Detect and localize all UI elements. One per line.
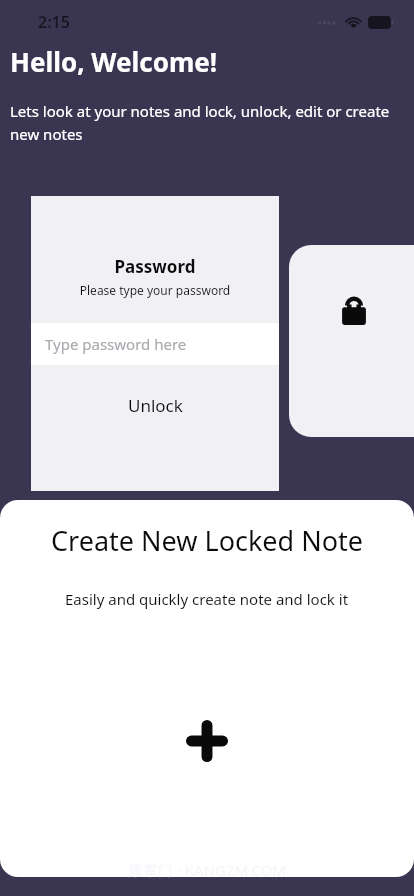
button[interactable]: Type password here — [31, 323, 279, 365]
staticText: Easily and quickly create note and lock … — [65, 589, 349, 609]
staticText: Create New Locked Note — [51, 522, 364, 559]
staticText: 2:15 — [38, 11, 70, 33]
staticText: Type password here — [45, 334, 187, 354]
staticText: Password — [31, 255, 279, 278]
button[interactable]: Create New Locked Note — [0, 500, 414, 877]
button[interactable]: Unlock — [31, 365, 279, 445]
staticText: Lets look at your notes and lock, unlock… — [10, 101, 404, 144]
button[interactable]: Locked note — [289, 245, 414, 437]
staticText: Please type your password — [31, 282, 279, 298]
staticText: Unlock — [128, 394, 183, 417]
button[interactable]: Create new note — [184, 718, 230, 764]
staticText: Hello, Welcome! — [10, 44, 218, 79]
staticText: 康掌门 · KANGZM.COM — [128, 860, 286, 880]
